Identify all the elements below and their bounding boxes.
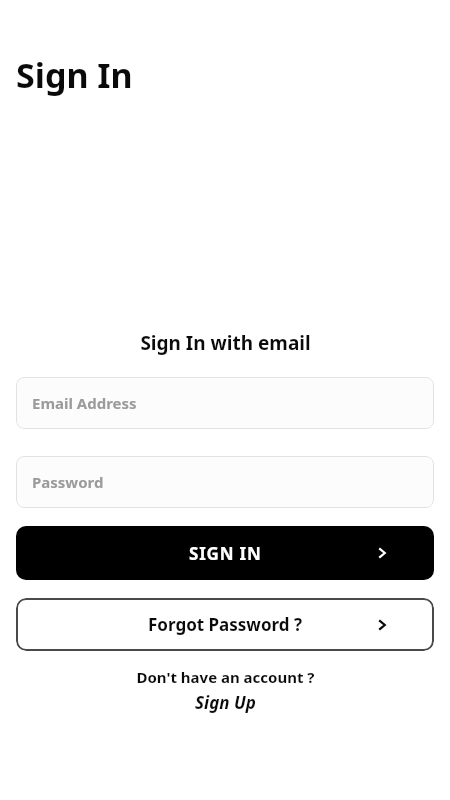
button[interactable]: SIGN IN [16,526,434,580]
button[interactable]: Password [16,456,434,508]
button[interactable]: Email Address [16,377,434,429]
staticText: Sign In [16,52,133,98]
staticText: Don't have an account ? [136,667,315,687]
staticText: Sign In with email [140,330,311,356]
staticText: Email Address [32,393,137,413]
staticText: SIGN IN [189,542,262,565]
staticText: Password [32,472,104,492]
button[interactable]: Sign Up [185,689,266,716]
staticText: Forgot Password ? [148,613,303,636]
button[interactable]: Forgot Password ? [16,598,434,651]
staticText: Sign Up [195,691,256,714]
